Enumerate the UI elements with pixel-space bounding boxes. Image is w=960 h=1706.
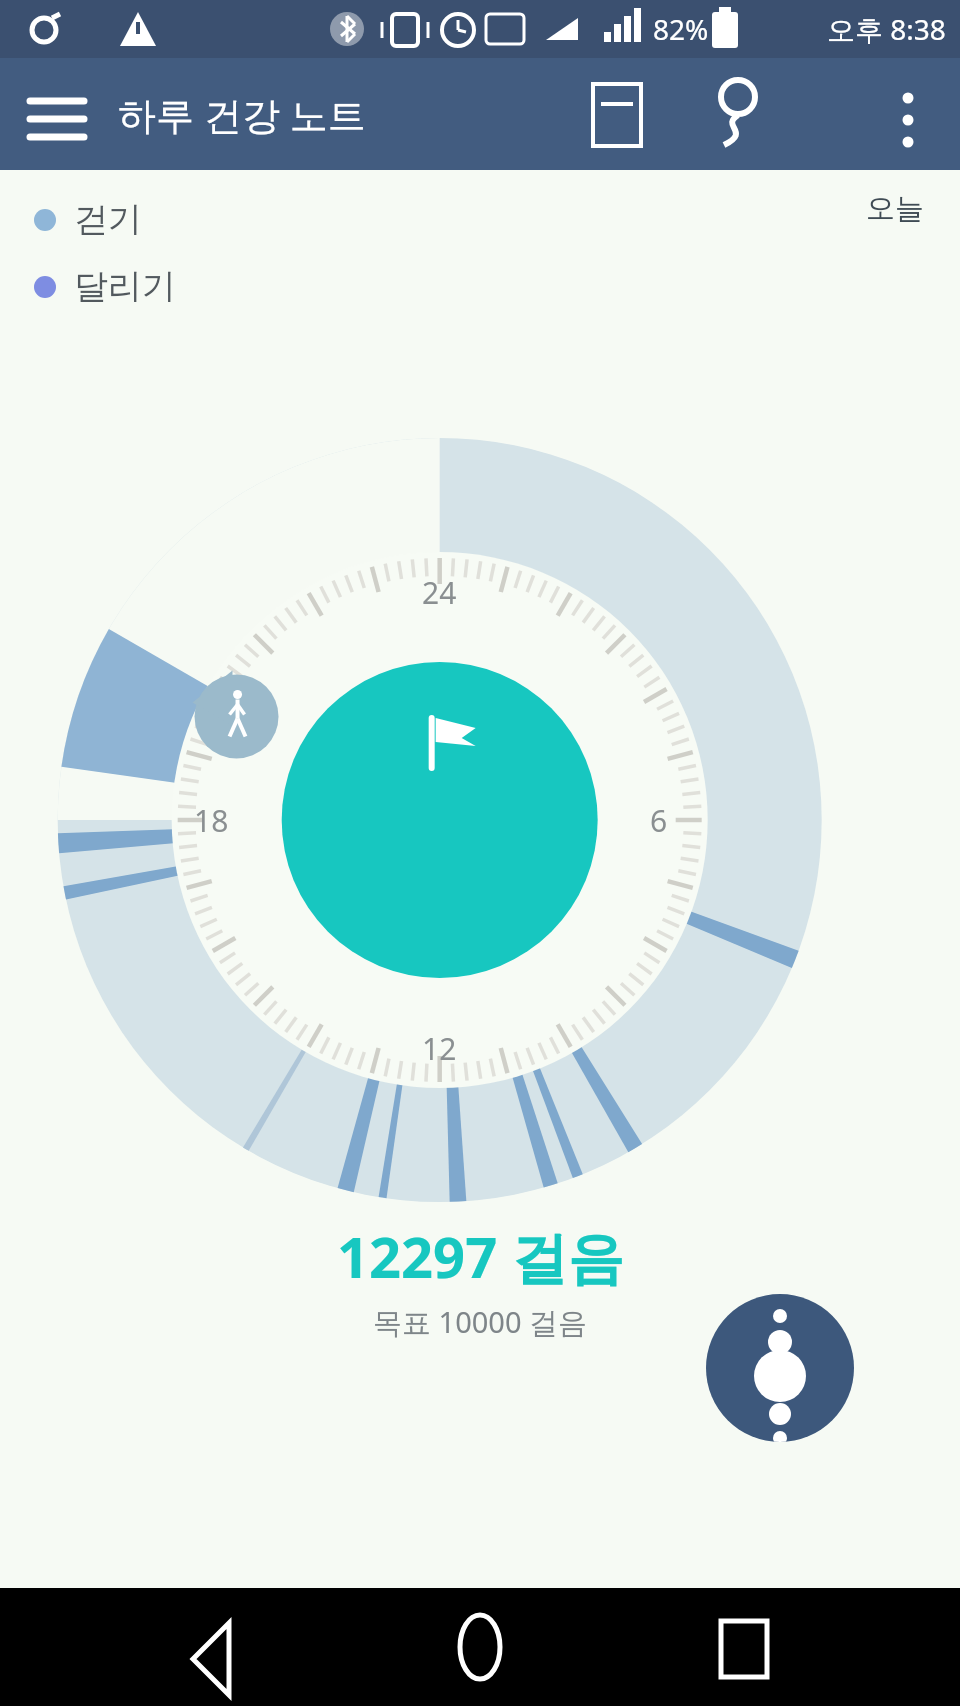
button[interactable]: 오늘 (860, 184, 930, 233)
button[interactable]: Recents (697, 1601, 789, 1693)
staticText: 24 (422, 572, 457, 613)
staticText: 걷기 (74, 198, 142, 241)
button[interactable]: Menu (22, 79, 92, 149)
staticText: 오늘 (866, 190, 924, 227)
button[interactable]: Calendar (575, 74, 655, 154)
staticText: 6 (650, 800, 668, 841)
button[interactable]: 달리기 (30, 261, 180, 312)
staticText: 82% (653, 10, 709, 48)
button[interactable]: Back (171, 1601, 263, 1693)
staticText: 12 (422, 1028, 457, 1069)
staticText: 하루 건강 노트 (118, 88, 366, 140)
staticText: 목표 10000 걸음 (373, 1302, 588, 1342)
staticText: 오후 8:38 (827, 10, 946, 48)
button[interactable]: Add record (706, 1294, 854, 1442)
button[interactable]: More options (878, 84, 938, 144)
staticText: 12297 걸음 (337, 1218, 624, 1294)
button[interactable]: 걷기 (30, 194, 146, 245)
button[interactable]: Route (690, 71, 776, 157)
staticText: 18 (194, 800, 229, 841)
button[interactable]: Home (434, 1601, 526, 1693)
staticText: 달리기 (74, 265, 176, 308)
